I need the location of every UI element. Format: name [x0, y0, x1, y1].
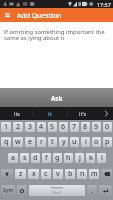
button[interactable]: 8 — [81, 122, 90, 132]
button[interactable]: h — [64, 153, 73, 163]
button[interactable] — [17, 185, 27, 196]
button[interactable]: Navigation menu — [0, 8, 14, 22]
staticText: l — [101, 153, 103, 163]
staticText: v — [56, 169, 60, 179]
button[interactable]: w — [13, 137, 23, 147]
button[interactable]: i — [81, 137, 90, 147]
button[interactable]: 5 — [48, 122, 57, 132]
staticText: Ask — [51, 94, 63, 102]
button[interactable]: j — [75, 153, 84, 163]
button[interactable]: k — [86, 153, 95, 163]
button[interactable]: u — [70, 137, 79, 147]
staticText: Sym — [3, 187, 14, 194]
button[interactable] — [99, 185, 112, 196]
staticText: . — [91, 186, 93, 196]
staticText: 17:57 — [97, 1, 111, 8]
button[interactable]: q — [1, 137, 11, 147]
button[interactable]: p — [103, 137, 112, 147]
staticText: If omitting something important the — [4, 28, 105, 36]
button[interactable]: f — [42, 153, 51, 163]
staticText: o — [94, 137, 99, 147]
staticText: its — [14, 110, 20, 117]
staticText: x — [32, 169, 36, 179]
staticText: 7 — [72, 122, 77, 132]
button[interactable]: t — [48, 137, 57, 147]
staticText: it's — [79, 110, 87, 117]
button[interactable]: n — [77, 169, 87, 179]
button[interactable] — [1, 169, 13, 179]
staticText: f — [45, 153, 48, 163]
button[interactable]: s — [20, 153, 29, 163]
button[interactable] — [101, 169, 112, 179]
button[interactable]: 9 — [92, 122, 101, 132]
button[interactable]: 2 — [13, 122, 23, 132]
button[interactable]: x — [28, 169, 39, 179]
button[interactable]: 4 — [37, 122, 46, 132]
staticText: m — [91, 169, 98, 179]
button[interactable] — [29, 185, 85, 196]
button[interactable]: g — [53, 153, 62, 163]
button[interactable]: c — [41, 169, 51, 179]
staticText: 4 — [39, 122, 44, 132]
staticText: j — [79, 153, 81, 163]
staticText: u — [72, 137, 77, 147]
staticText: w — [15, 137, 21, 147]
button[interactable]: . — [87, 185, 97, 196]
staticText: 1 — [4, 122, 9, 132]
staticText: e — [28, 137, 33, 147]
staticText: 9 — [94, 122, 99, 132]
staticText: s — [23, 153, 27, 163]
staticText: same as lying about it — [4, 34, 65, 42]
staticText: 2 — [16, 122, 21, 132]
button[interactable]: m — [89, 169, 99, 179]
button[interactable]: 6 — [59, 122, 68, 132]
staticText: n — [80, 169, 85, 179]
button[interactable]: l — [97, 153, 106, 163]
staticText: q — [4, 137, 9, 147]
button[interactable]: e — [25, 137, 35, 147]
button[interactable]: Sym — [1, 185, 15, 196]
staticText: t — [51, 137, 54, 147]
staticText: 6 — [61, 122, 66, 132]
button[interactable]: d — [31, 153, 40, 163]
button[interactable]: a — [8, 153, 18, 163]
staticText: 3 — [28, 122, 33, 132]
button[interactable]: 7 — [70, 122, 79, 132]
staticText: d — [33, 153, 38, 163]
button[interactable]: More suggestions — [99, 107, 113, 120]
staticText: Add Question — [17, 11, 62, 20]
button[interactable]: r — [37, 137, 46, 147]
button[interactable]: it — [34, 107, 66, 120]
button[interactable]: 1 — [1, 122, 11, 132]
button[interactable]: b — [65, 169, 75, 179]
button[interactable]: o — [92, 137, 101, 147]
staticText: z — [19, 169, 23, 179]
button[interactable]: y — [59, 137, 68, 147]
button[interactable]: z — [15, 169, 26, 179]
staticText: 5 — [50, 122, 55, 132]
staticText: i — [85, 137, 87, 147]
staticText: it — [48, 110, 52, 117]
staticText: y — [62, 137, 66, 147]
staticText: g — [55, 153, 60, 163]
staticText: p — [105, 137, 110, 147]
staticText: b — [68, 169, 73, 179]
staticText: 0 — [105, 122, 110, 132]
button[interactable]: 3 — [25, 122, 35, 132]
staticText: c — [44, 169, 48, 179]
button[interactable]: it's — [67, 107, 99, 120]
staticText: k — [89, 153, 93, 163]
button[interactable]: 0 — [103, 122, 112, 132]
staticText: a — [11, 153, 16, 163]
button[interactable]: its — [0, 107, 33, 120]
button[interactable]: Ask — [0, 88, 113, 107]
staticText: h — [66, 153, 71, 163]
staticText: r — [40, 137, 43, 147]
staticText: 8 — [83, 122, 88, 132]
button[interactable]: v — [53, 169, 63, 179]
